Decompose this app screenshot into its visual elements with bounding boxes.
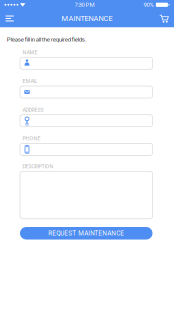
staticText: EMAIL — [23, 78, 38, 84]
staticText: NAME — [23, 49, 38, 55]
button[interactable]: REQUEST MAINTENANCE — [20, 227, 152, 239]
staticText: MAINTENANCE — [61, 14, 112, 23]
staticText: 7:30 PM — [74, 1, 94, 8]
staticText: Please fill in all the required fields. — [7, 36, 87, 43]
staticText: ADDRESS — [23, 107, 44, 113]
staticText: REQUEST MAINTENANCE — [48, 229, 124, 237]
staticText: 90% — [143, 1, 153, 8]
button[interactable]: Menu — [0, 9, 29, 27]
staticText: DESCRIPTION — [23, 163, 54, 169]
button[interactable]: Shopping cart — [144, 9, 174, 27]
staticText: PHONE — [23, 135, 41, 142]
